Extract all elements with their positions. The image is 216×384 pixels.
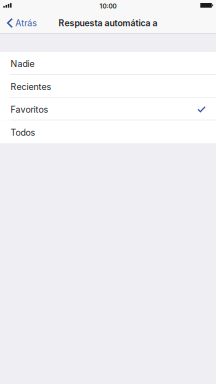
button[interactable]: Todos (0, 120, 216, 143)
staticText: Favoritos (10, 104, 48, 115)
button[interactable]: Atrás (0, 13, 43, 33)
staticText: Recientes (10, 81, 51, 92)
staticText: 10:00 (99, 2, 116, 10)
staticText: Todos (10, 127, 35, 138)
staticText: Nadie (10, 59, 34, 69)
button[interactable]: Favoritos (0, 98, 216, 120)
button[interactable]: Recientes (0, 75, 216, 98)
button[interactable]: Nadie (0, 52, 216, 75)
staticText: Atrás (15, 18, 37, 28)
staticText: Respuesta automática a (58, 18, 157, 28)
